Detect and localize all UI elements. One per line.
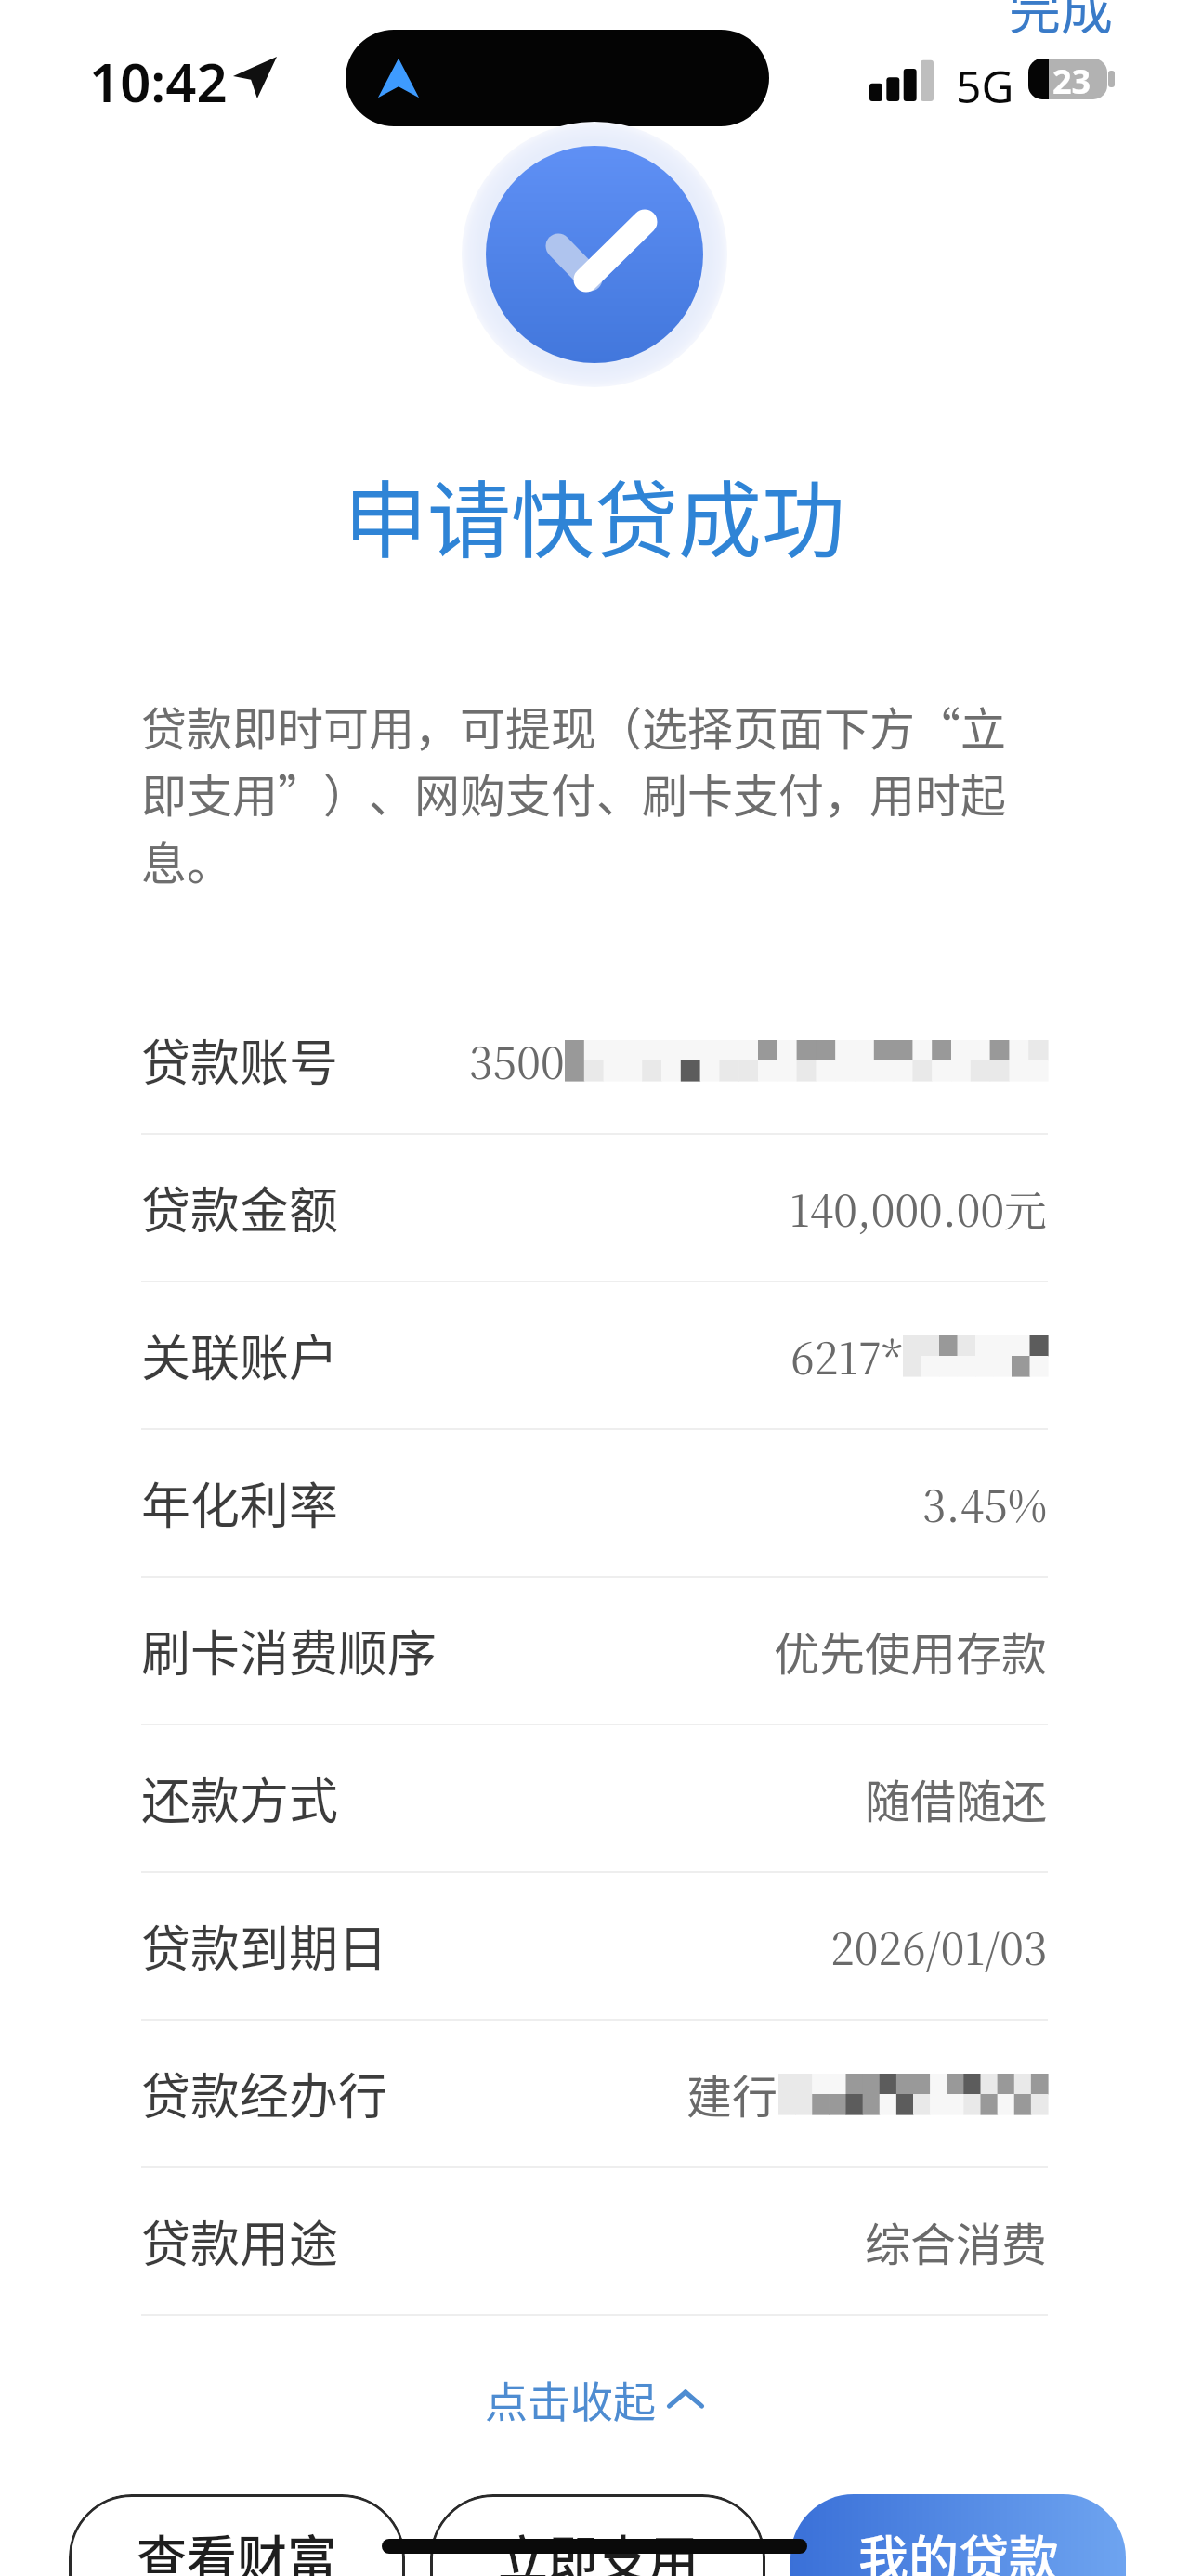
button[interactable]: 查看财富 [69, 2494, 405, 2576]
staticText: 贷款用途 [141, 2205, 338, 2277]
staticText: 贷款到期日 [141, 1910, 387, 1982]
staticText: 10:42 [89, 45, 228, 118]
staticText: 查看财富 [137, 2519, 337, 2576]
staticText: 关联账户 [141, 1320, 338, 1391]
button[interactable]: 我的贷款 [790, 2494, 1126, 2576]
staticText: 贷款账号 [141, 1024, 338, 1096]
staticText: 申请快贷成功 [0, 454, 1189, 575]
staticText: 随借随还 [865, 1765, 1048, 1831]
other: Signal strength [869, 59, 934, 101]
staticText: 140,000.00元 [790, 1177, 1048, 1239]
staticText: 3.45% [922, 1473, 1048, 1534]
staticText: 优先使用存款 [774, 1618, 1048, 1684]
other: Location [232, 54, 277, 98]
staticText: 6217* [790, 1325, 903, 1386]
staticText: 2026/01/03 [830, 1916, 1048, 1977]
staticText: 23 [1052, 59, 1091, 99]
staticText: 贷款经办行 [141, 2058, 387, 2129]
staticText: 还款方式 [141, 1763, 338, 1834]
staticText: 建行 [686, 2061, 778, 2127]
staticText: 5G [956, 56, 1014, 116]
staticText: 3500 [469, 1030, 565, 1091]
staticText: 立即支用 [498, 2519, 699, 2576]
staticText: 年化利率 [141, 1467, 338, 1539]
staticText: 我的贷款 [858, 2519, 1059, 2576]
button[interactable]: 完成 [1009, 0, 1113, 44]
button[interactable]: 点击收起 [448, 2357, 741, 2441]
staticText: 综合消费 [865, 2208, 1048, 2274]
staticText: 点击收起 [485, 2368, 656, 2430]
staticText: 贷款金额 [141, 1172, 338, 1243]
staticText: 刷卡消费顺序 [141, 1615, 437, 1686]
staticText: 贷款即时可用，可提现（选择页面下方“立即支用”）、网购支付、刷卡支付，用时起息。 [141, 693, 1048, 894]
button[interactable]: 立即支用 [430, 2494, 765, 2576]
